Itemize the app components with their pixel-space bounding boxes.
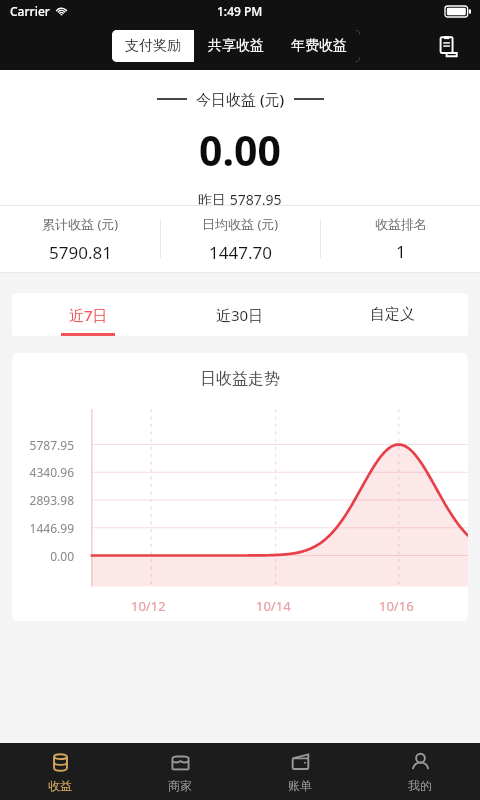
staticText: 1: [396, 240, 406, 263]
staticText: Carrier: [10, 3, 50, 19]
staticText: 1447.70: [209, 241, 272, 264]
staticText: 2893.98: [12, 492, 74, 508]
button[interactable]: 账单记录: [426, 25, 468, 67]
staticText: 昨日 5787.95: [198, 190, 282, 205]
staticText: 日均收益 (元): [202, 215, 279, 233]
staticText: 年费收益: [291, 37, 347, 55]
staticText: 10/14: [256, 597, 291, 615]
staticText: 1446.99: [12, 520, 74, 536]
staticText: 10/12: [131, 597, 166, 615]
button[interactable]: 支付奖励: [112, 30, 194, 62]
button[interactable]: 近30日: [164, 293, 316, 336]
staticText: 我的: [408, 778, 432, 793]
button[interactable]: 收益排名: [321, 206, 480, 272]
staticText: 商家: [168, 778, 192, 793]
button[interactable]: 累计收益 (元): [0, 206, 160, 272]
staticText: 收益: [48, 778, 72, 793]
button[interactable]: 收益: [0, 743, 120, 800]
button[interactable]: 共享收益: [194, 30, 277, 62]
staticText: 1:49 PM: [217, 3, 263, 19]
staticText: 0.00: [12, 548, 74, 564]
staticText: 今日收益 (元): [196, 89, 285, 109]
button[interactable]: 商家: [120, 743, 240, 800]
staticText: 4340.96: [12, 464, 74, 480]
staticText: 累计收益 (元): [42, 215, 119, 233]
staticText: 5787.95: [12, 437, 74, 453]
staticText: 0.00: [199, 122, 281, 178]
button[interactable]: 账单: [240, 743, 360, 800]
staticText: 支付奖励: [125, 37, 181, 55]
staticText: 近7日: [69, 305, 108, 325]
staticText: 共享收益: [208, 37, 264, 55]
button[interactable]: 我的: [360, 743, 480, 800]
staticText: 账单: [288, 778, 312, 793]
staticText: 自定义: [370, 305, 415, 324]
staticText: 日收益走势: [12, 369, 468, 389]
staticText: 收益排名: [375, 216, 427, 232]
button[interactable]: 自定义: [316, 293, 468, 336]
button[interactable]: 近7日: [12, 293, 164, 336]
staticText: 近30日: [216, 305, 264, 325]
button[interactable]: 日均收益 (元): [161, 206, 320, 272]
staticText: 5790.81: [49, 241, 112, 264]
button[interactable]: 年费收益: [277, 30, 360, 62]
staticText: 10/16: [379, 597, 414, 615]
